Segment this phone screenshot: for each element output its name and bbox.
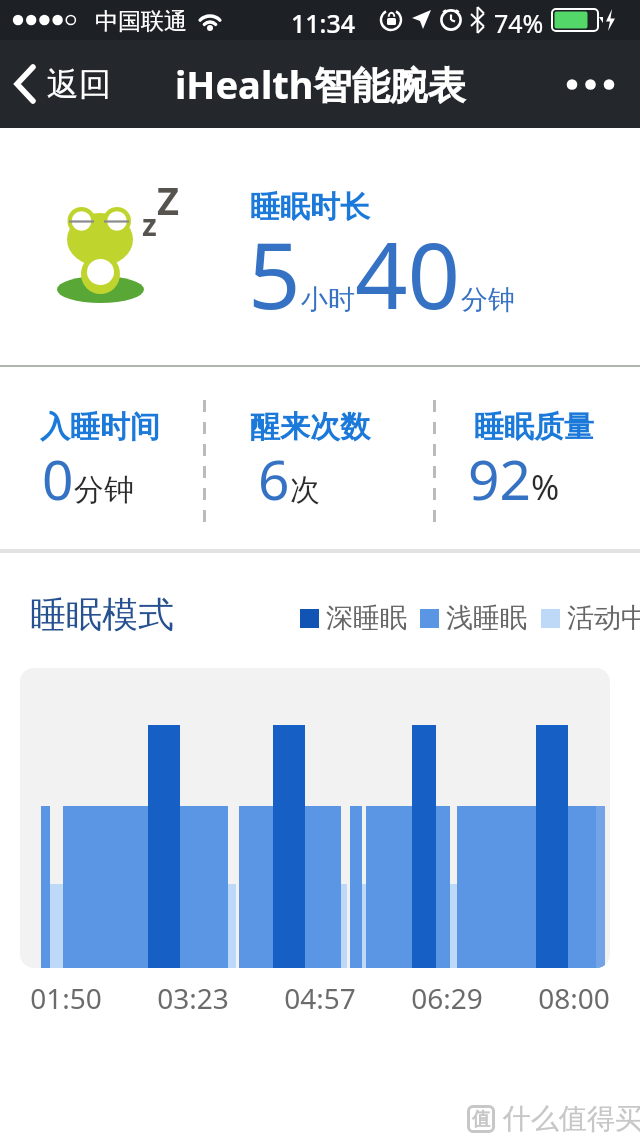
staticText: 92 [468, 441, 531, 516]
button[interactable] [566, 79, 616, 90]
staticText: 活动中 [567, 601, 640, 635]
staticText: Z [157, 174, 180, 226]
button[interactable]: 返回 [0, 64, 111, 104]
staticText: 08:00 [538, 979, 610, 1017]
staticText: 6 [258, 441, 290, 516]
staticText: 次 [290, 471, 320, 509]
staticText: 01:50 [30, 979, 102, 1017]
staticText: 分钟 [461, 283, 515, 317]
staticText: 入睡时间 [40, 408, 160, 446]
staticText: 睡眠质量 [474, 408, 594, 446]
staticText: z [142, 204, 157, 245]
staticText: 5 [248, 211, 301, 336]
staticText: 中国联通 [95, 7, 187, 36]
staticText: 睡眠时长 [250, 188, 370, 226]
staticText: 04:57 [284, 979, 356, 1017]
staticText: 11:34 [291, 6, 356, 40]
staticText: 深睡眠 [326, 601, 407, 635]
staticText: 值 [472, 1108, 490, 1131]
staticText: 40 [355, 211, 461, 336]
staticText: 03:23 [157, 979, 229, 1017]
staticText: % [531, 464, 560, 510]
staticText: 醒来次数 [250, 408, 370, 446]
staticText: 0 [42, 441, 74, 516]
staticText: 小时 [301, 283, 355, 317]
staticText: 返回 [47, 64, 111, 104]
staticText: 浅睡眠 [446, 601, 527, 635]
staticText: 06:29 [411, 979, 483, 1017]
staticText: 分钟 [74, 471, 134, 509]
staticText: 74% [494, 6, 544, 40]
staticText: 睡眠模式 [30, 592, 174, 637]
staticText: iHealth智能腕表 [175, 58, 466, 110]
staticText: 什么值得买 [503, 1101, 640, 1136]
